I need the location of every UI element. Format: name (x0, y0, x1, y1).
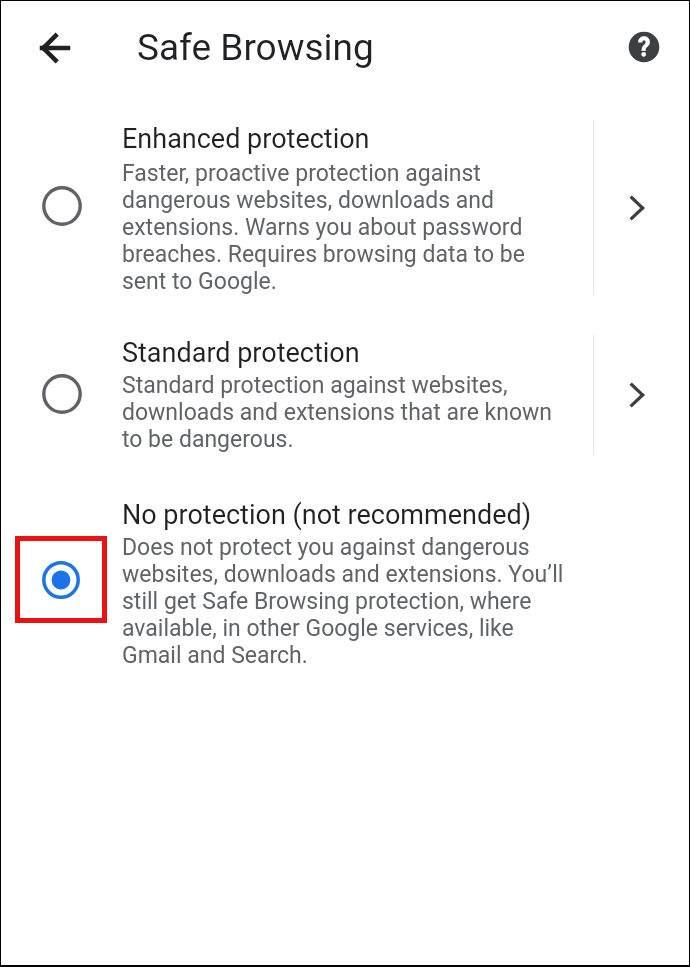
staticText: Safe Browsing (137, 26, 374, 69)
staticText: ? (638, 33, 651, 62)
button[interactable]: Enhanced protection settings (616, 182, 668, 234)
staticText: Faster, proactive protection against dan… (122, 160, 547, 295)
staticText: Standard protection (122, 337, 360, 369)
button[interactable]: Help and feedback (616, 19, 672, 75)
button[interactable]: Standard protection settings (616, 369, 668, 421)
staticText: No protection (not recommended) (122, 499, 532, 531)
staticText: Does not protect you against dangerous w… (122, 534, 577, 669)
button[interactable]: Enhanced protection (1, 105, 592, 313)
button[interactable]: Standard protection (1, 319, 592, 471)
button[interactable]: No protection (not recommended) (1, 483, 669, 683)
button[interactable]: Navigate up (27, 20, 83, 76)
staticText: Standard protection against websites, do… (122, 372, 567, 453)
staticText: Enhanced protection (122, 123, 370, 155)
